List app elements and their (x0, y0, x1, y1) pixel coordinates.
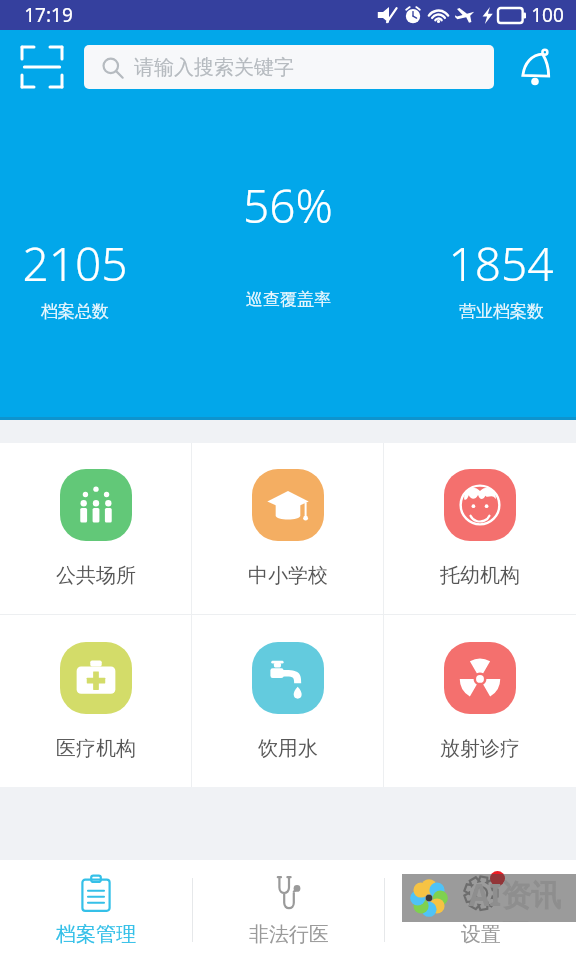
button[interactable]: 医疗机构 (0, 615, 192, 787)
button[interactable]: 56% (243, 174, 333, 310)
staticText: 请输入搜索关键字 (134, 55, 294, 80)
staticText: 托幼机构 (440, 563, 520, 588)
button[interactable]: 1854 (448, 232, 554, 322)
other: Illegal practice (269, 874, 309, 914)
button[interactable]: 饮用水 (192, 615, 384, 787)
staticText: AI资讯网 (454, 874, 576, 922)
staticText: 饮用水 (258, 736, 318, 761)
staticText: 档案总数 (41, 301, 109, 322)
button[interactable]: 放射诊疗 (384, 615, 576, 787)
staticText: 56% (243, 174, 333, 237)
button[interactable]: Illegal practice (193, 860, 384, 960)
staticText: 设置 (461, 922, 501, 947)
staticText: 2105 (22, 232, 128, 295)
staticText: 1854 (448, 232, 554, 295)
button[interactable]: Scan (0, 30, 84, 104)
button[interactable]: Archive management (0, 860, 192, 960)
button[interactable]: 公共场所 (0, 443, 192, 614)
button[interactable]: Notifications (494, 30, 576, 104)
staticText: 中小学校 (248, 563, 328, 588)
staticText: 100 (531, 2, 564, 28)
staticText: 放射诊疗 (440, 736, 520, 761)
button[interactable]: 请输入搜索关键字 (84, 45, 494, 89)
staticText: 医疗机构 (56, 736, 136, 761)
other: Archive management (76, 874, 116, 914)
button[interactable]: 托幼机构 (384, 443, 576, 614)
button[interactable]: Settings (385, 860, 576, 960)
staticText: 巡查覆盖率 (246, 289, 331, 310)
button[interactable]: 2105 (22, 232, 128, 322)
staticText: 公共场所 (56, 563, 136, 588)
staticText: 档案管理 (56, 922, 136, 947)
staticText: 营业档案数 (459, 301, 544, 322)
staticText: 非法行医 (249, 922, 329, 947)
staticText: 17:19 (24, 2, 73, 28)
other: Settings (461, 874, 501, 914)
button[interactable]: 中小学校 (192, 443, 384, 614)
